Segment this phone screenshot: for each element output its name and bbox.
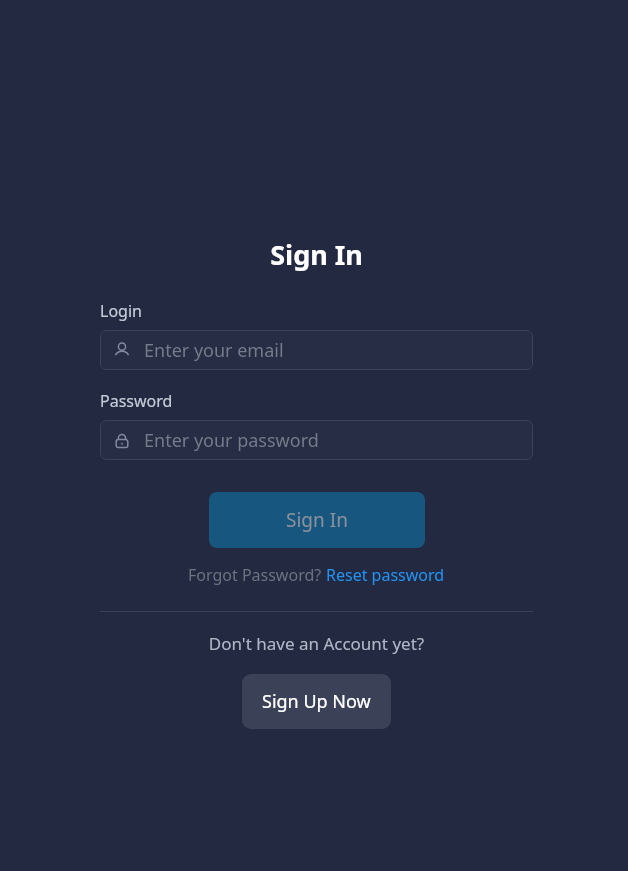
staticText: Enter your email bbox=[144, 338, 284, 363]
staticText: Reset password bbox=[326, 564, 445, 586]
staticText: Enter your password bbox=[144, 428, 319, 453]
button[interactable]: Enter your email bbox=[100, 330, 533, 370]
staticText: Sign In bbox=[100, 236, 533, 273]
staticText: Password bbox=[100, 390, 173, 412]
button[interactable]: Enter your password bbox=[100, 420, 533, 460]
staticText: Sign In bbox=[286, 507, 348, 533]
button[interactable]: Reset password bbox=[326, 564, 445, 586]
staticText: Forgot Password? bbox=[188, 564, 326, 586]
staticText: Sign Up Now bbox=[262, 689, 371, 714]
staticText: Login bbox=[100, 300, 142, 322]
button[interactable]: Sign Up Now bbox=[242, 674, 391, 729]
button[interactable]: Sign In bbox=[209, 492, 425, 548]
staticText: Don't have an Account yet? bbox=[100, 632, 533, 655]
